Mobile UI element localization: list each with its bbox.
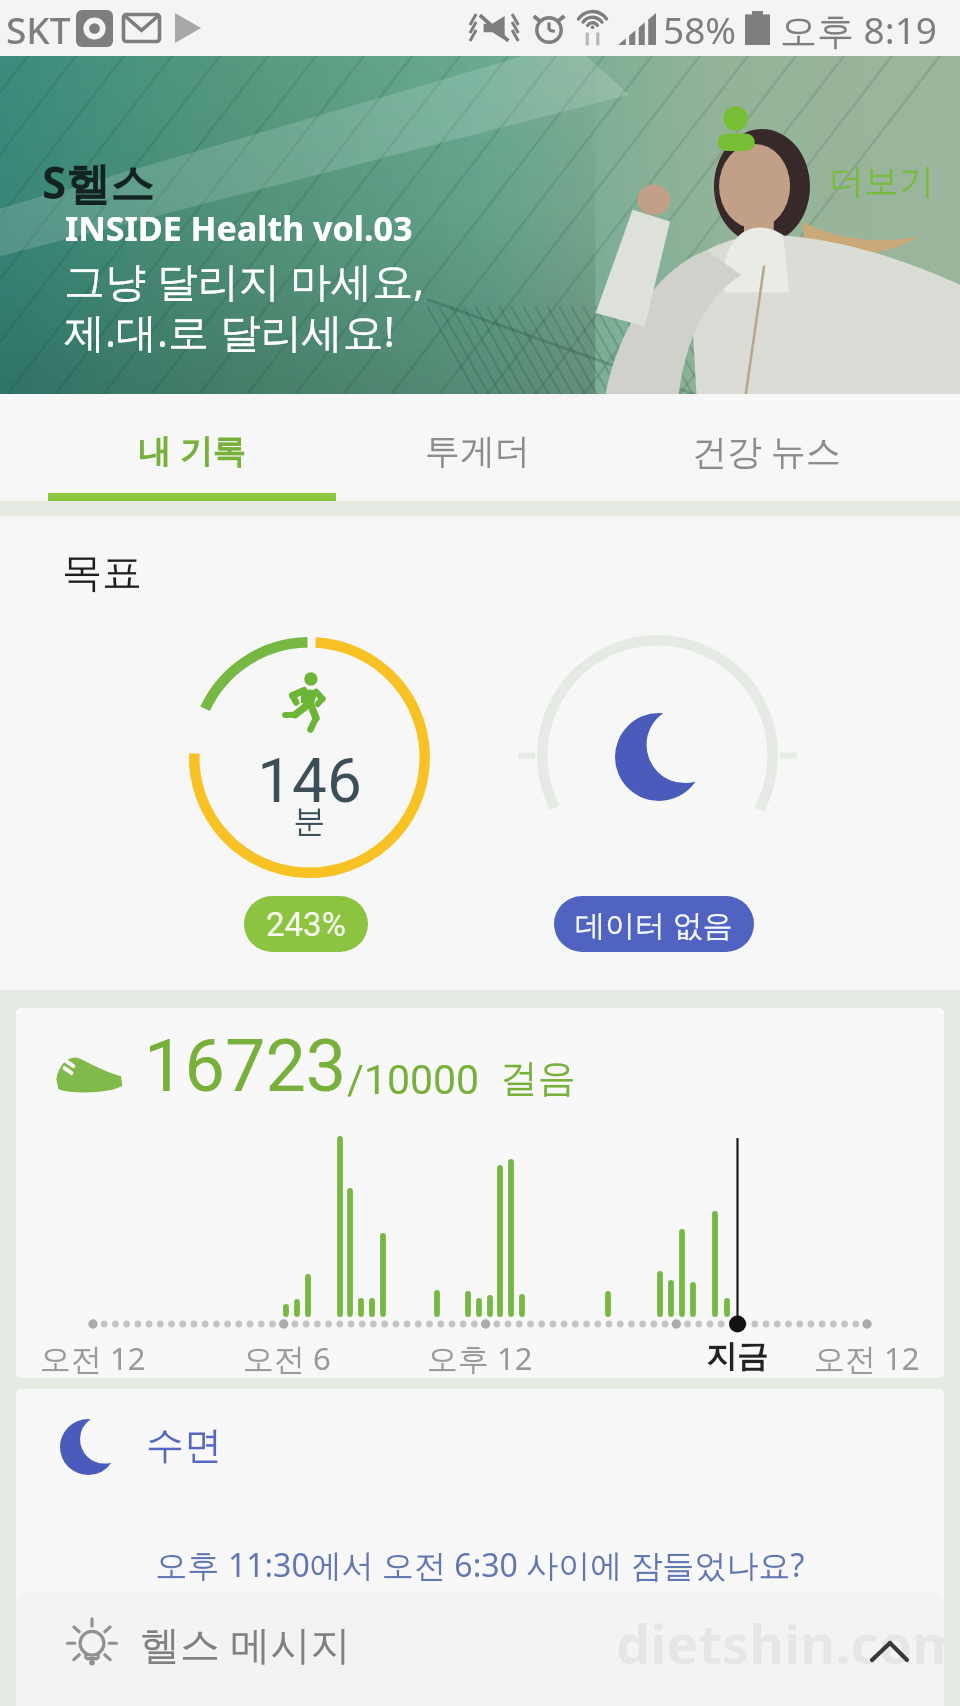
staticText: 오후 8:19 bbox=[780, 4, 938, 55]
staticText: 데이터 없음 bbox=[575, 904, 733, 945]
button[interactable]: 건강 뉴스 bbox=[617, 408, 917, 493]
staticText: 오전 6 bbox=[243, 1337, 331, 1378]
staticText: 58% bbox=[663, 4, 737, 54]
staticText: 오전 12 bbox=[814, 1337, 920, 1378]
staticText: 지금 bbox=[706, 1337, 768, 1376]
button[interactable]: 146 bbox=[189, 637, 430, 878]
button[interactable]: Expand health messages bbox=[842, 1606, 922, 1686]
staticText: S헬스 bbox=[42, 152, 155, 212]
staticText: 오전 12 bbox=[40, 1337, 146, 1378]
button[interactable]: 243% bbox=[244, 896, 368, 952]
staticText: 투게더 bbox=[425, 429, 530, 473]
staticText: 146 bbox=[189, 744, 430, 817]
staticText: 오후 11:30에서 오전 6:30 사이에 잠들었나요? bbox=[16, 1543, 944, 1587]
button[interactable]: 내 기록 bbox=[42, 408, 342, 493]
staticText: dietshin.com bbox=[616, 1606, 944, 1680]
button[interactable]: 데이터 없음 bbox=[554, 896, 754, 952]
button[interactable]: 헬스 메시지 bbox=[16, 1592, 944, 1706]
staticText: 헬스 메시지 bbox=[140, 1616, 351, 1671]
button[interactable]: 더보기 bbox=[829, 159, 934, 203]
staticText: 내 기록 bbox=[138, 428, 246, 473]
staticText: 걸음 bbox=[480, 1050, 576, 1102]
button[interactable] bbox=[537, 635, 778, 876]
button[interactable]: 16723 bbox=[16, 1008, 944, 1378]
staticText: 그냥 달리지 마세요, 제.대.로 달리세요! bbox=[64, 252, 425, 359]
button[interactable]: 투게더 bbox=[327, 408, 627, 493]
staticText: 오후 12 bbox=[427, 1337, 533, 1378]
staticText: SKT bbox=[6, 4, 71, 54]
staticText: INSIDE Health vol.03 bbox=[65, 205, 413, 251]
staticText: /10000 bbox=[347, 1056, 480, 1104]
staticText: 분 bbox=[189, 801, 430, 841]
staticText: 목표 bbox=[62, 547, 142, 597]
staticText: 16723 bbox=[144, 1024, 347, 1108]
staticText: 243% bbox=[266, 905, 346, 944]
button[interactable]: S헬스 bbox=[0, 56, 960, 394]
button[interactable]: 수면 bbox=[16, 1389, 944, 1619]
staticText: 건강 뉴스 bbox=[692, 427, 842, 475]
staticText: 수면 bbox=[146, 1421, 222, 1469]
